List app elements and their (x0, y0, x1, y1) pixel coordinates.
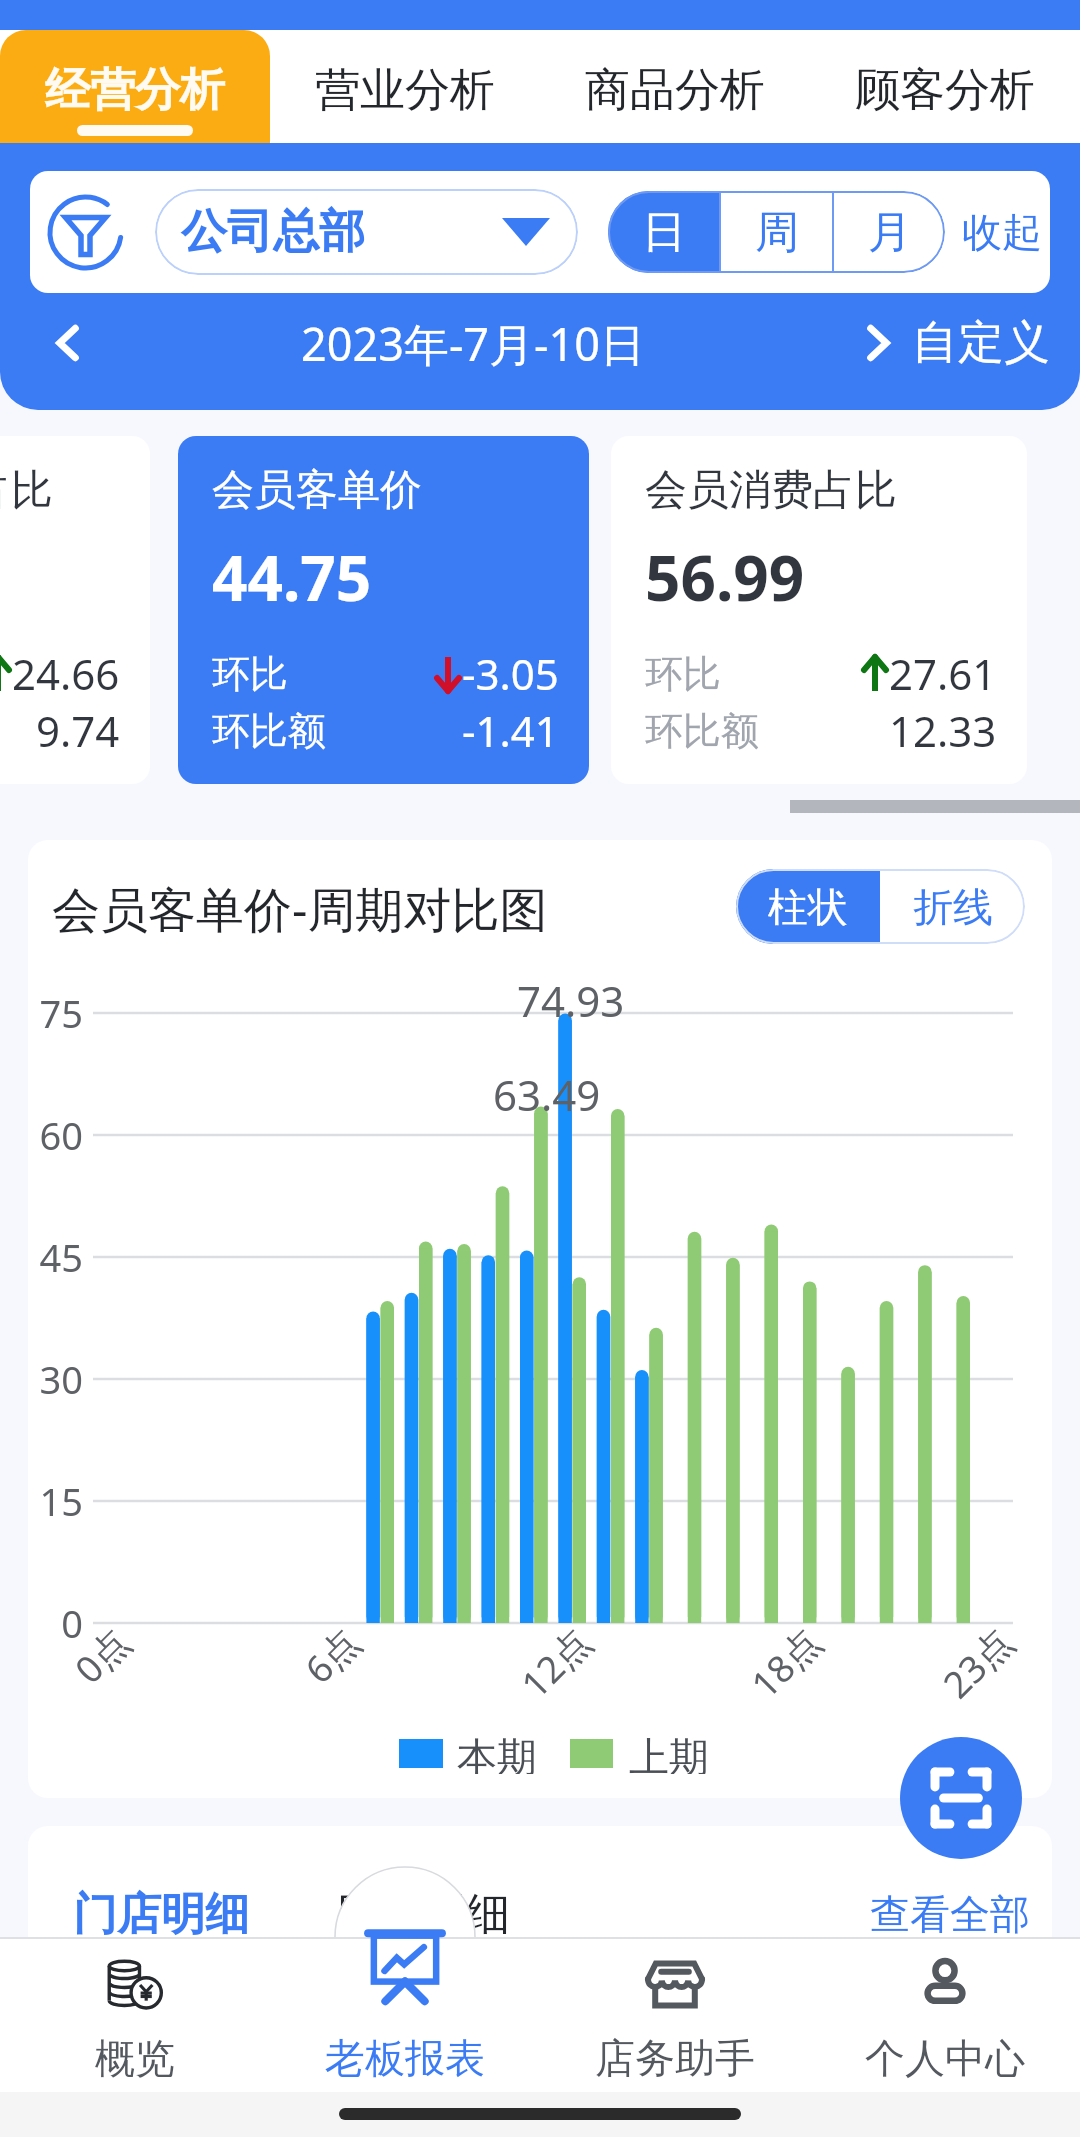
button[interactable]: 老板报表 (270, 1925, 540, 2092)
button[interactable]: Previous day (40, 315, 96, 371)
button[interactable]: 营业分析 (270, 30, 540, 143)
staticText: 环比额 (645, 707, 759, 755)
staticText: 会员客单价 (212, 464, 422, 517)
staticText: 营业分析 (315, 62, 495, 119)
staticText: -3.05 (462, 645, 559, 702)
button[interactable]: Scan (900, 1737, 1022, 1859)
staticText: 顾客分析 (855, 62, 1035, 119)
staticText: 环比 (212, 650, 288, 698)
button[interactable]: 会员消费占比 (0, 436, 150, 784)
staticText: 会员消费占比 (645, 464, 897, 517)
staticText: 折线 (913, 882, 993, 932)
staticText: 柱状 (768, 882, 848, 932)
staticText: 15 (39, 1475, 83, 1527)
staticText: 上期 (629, 1732, 709, 1774)
button[interactable]: 公司总部 (155, 189, 578, 275)
staticText: 12.33 (889, 702, 997, 759)
staticText: 2023年-7月-10日 (96, 313, 850, 374)
button[interactable]: 日 (608, 191, 719, 273)
staticText: 概览 (95, 2033, 175, 2083)
staticText: 9.74 (36, 702, 120, 759)
staticText: 74.93 (517, 972, 625, 1029)
staticText: 18点 (739, 1616, 832, 1708)
staticText: 30 (39, 1353, 83, 1405)
button[interactable]: 店务助手 (540, 1925, 810, 2092)
staticText: 周 (755, 205, 799, 260)
staticText: 经营分析 (45, 62, 225, 119)
button[interactable]: 会员客单价 (178, 436, 589, 784)
staticText: 56.99 (645, 535, 805, 619)
staticText: 月 (868, 205, 912, 260)
staticText: 会员客单价-周期对比图 (52, 876, 548, 942)
staticText: 45 (39, 1231, 83, 1283)
button[interactable]: 月 (834, 191, 945, 273)
button[interactable]: 概览 (0, 1925, 270, 2092)
staticText: 12点 (509, 1616, 602, 1708)
staticText: 0点 (63, 1616, 141, 1694)
staticText: 23点 (931, 1616, 1024, 1708)
staticText: 60 (39, 1109, 83, 1161)
button[interactable]: 会员消费占比 (611, 436, 1027, 784)
staticText: 75 (39, 987, 83, 1039)
staticText: 63.49 (493, 1066, 601, 1123)
staticText: 自定义 (912, 314, 1050, 372)
staticText: 公司总部 (181, 203, 365, 261)
button[interactable]: 柱状 (736, 869, 880, 944)
staticText: 会员消费占比 (0, 464, 53, 517)
button[interactable]: 个人中心 (810, 1925, 1080, 2092)
staticText: 商品分析 (585, 62, 765, 119)
button[interactable]: 顾客分析 (810, 30, 1080, 143)
staticText: 老板报表 (325, 2033, 485, 2083)
staticText: 环比额 (212, 707, 326, 755)
staticText: 44.75 (212, 535, 372, 619)
staticText: 27.61 (889, 645, 997, 702)
button[interactable]: 折线 (880, 869, 1025, 944)
button[interactable]: Filter (47, 194, 124, 271)
button[interactable]: 收起 (962, 207, 1042, 257)
button[interactable]: 自定义 (850, 314, 1050, 372)
staticText: 店务助手 (595, 2033, 755, 2083)
staticText: 6点 (293, 1616, 371, 1694)
button[interactable]: 门店明细 (73, 1887, 249, 1942)
button[interactable]: 经营分析 (0, 30, 270, 143)
button[interactable]: 查看全部 (870, 1889, 1030, 1939)
button[interactable]: 周 (721, 191, 832, 273)
staticText: 本期 (457, 1732, 537, 1774)
staticText: 环比 (645, 650, 721, 698)
staticText: 24.66 (12, 645, 120, 702)
staticText: 个人中心 (865, 2033, 1025, 2083)
staticText: -1.41 (462, 702, 559, 759)
button[interactable]: 商品分析 (540, 30, 810, 143)
button[interactable]: 日期明细 (334, 1887, 510, 1942)
staticText: 0 (61, 1597, 83, 1649)
staticText: 日 (642, 205, 686, 260)
